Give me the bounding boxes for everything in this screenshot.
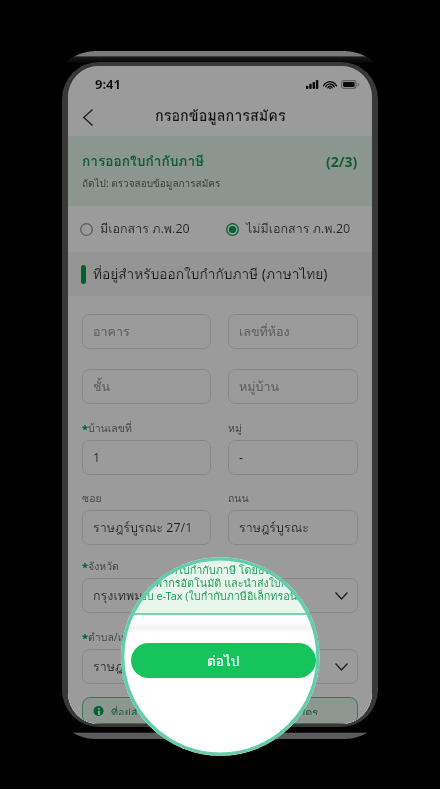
staticText: ตำบล/แขวง	[88, 629, 143, 646]
staticText: เลขที่ห้อง	[239, 322, 290, 342]
button[interactable]: -	[228, 440, 358, 475]
staticText: ที่อยู่สำหรับออกใบกำกับภาษีต้องตรงตามบัต…	[111, 705, 348, 715]
button[interactable]: Back	[68, 98, 106, 136]
staticText: ไม่มีเอกสาร ภ.พ.20	[246, 219, 351, 239]
staticText: กรุงเทพมหานคร	[93, 586, 182, 606]
button[interactable]: ราษฎร์บูรณะ	[228, 510, 358, 545]
button[interactable]: ไม่มีเอกสาร ภ.พ.20	[226, 219, 351, 239]
staticText: บ้านเลขที่	[88, 420, 132, 437]
staticText: ซอย	[82, 490, 102, 507]
button[interactable]: ราษฎร์บูรณะ	[82, 649, 358, 684]
staticText: ราษฎร์บูรณะ	[239, 518, 310, 538]
button[interactable]: หมู่บ้าน	[228, 369, 358, 404]
staticText: ต่อไป	[207, 650, 240, 671]
staticText: ให้กรมสรรพากรอัตโนมัติ และนำส่งใบกำกับภา…	[105, 575, 328, 592]
staticText: มีเอกสาร ภ.พ.20	[100, 219, 190, 239]
staticText: ถัดไป: ตรวจสอบข้อมูลการสมัคร	[82, 176, 221, 192]
staticText: ถนน	[228, 490, 249, 507]
staticText: *	[82, 559, 88, 574]
button[interactable]: อาคาร	[82, 314, 211, 349]
staticText: ราษฎร์บูรณะ 27/1	[93, 518, 193, 538]
button[interactable]: มีเอกสาร ภ.พ.20	[80, 219, 190, 239]
staticText: ราษฎร์บูรณะ	[93, 657, 164, 677]
staticText: (2/3)	[326, 152, 358, 171]
staticText: *	[82, 630, 88, 645]
staticText: ที่อยู่นี้จะใช้ในการออกใบกำกับภาษี โดยธน…	[75, 562, 362, 579]
button[interactable]: 1	[82, 440, 211, 475]
button[interactable]: ต่อไป	[131, 643, 316, 678]
staticText: จังหวัด	[88, 558, 119, 575]
staticText: กรอกข้อมูลการสมัคร	[155, 104, 286, 127]
staticText: -	[239, 449, 244, 466]
staticText: อาคาร	[93, 322, 130, 342]
staticText: ชั้น	[93, 377, 111, 397]
button[interactable]: เลขที่ห้อง	[228, 314, 358, 349]
staticText: *	[82, 421, 88, 436]
button[interactable]: ราษฎร์บูรณะ 27/1	[82, 510, 211, 545]
staticText: 1	[93, 449, 101, 466]
staticText: หมู่	[228, 420, 242, 437]
staticText: 9:41	[95, 75, 121, 93]
button[interactable]: กรุงเทพมหานคร	[82, 578, 358, 613]
button[interactable]: ชั้น	[82, 369, 211, 404]
staticText: การออกใบกำกับภาษี	[82, 150, 326, 172]
staticText: แบบ e-Tax (ใบกำกับภาษีอิเล็กทรอนิกส์)	[133, 588, 314, 605]
staticText: ที่อยู่สำหรับออกใบกำกับภาษี (ภาษาไทย)	[93, 263, 328, 285]
staticText: หมู่บ้าน	[239, 377, 279, 397]
